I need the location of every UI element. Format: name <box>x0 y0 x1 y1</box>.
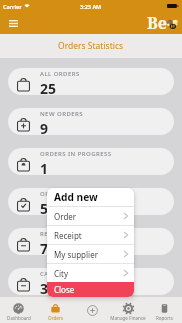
staticText: 5 <box>40 199 49 215</box>
button[interactable]: Add new <box>74 297 110 323</box>
button[interactable]: ORDERS DONE <box>8 188 174 215</box>
staticText: Close <box>54 284 75 295</box>
staticText: Reports <box>156 315 173 321</box>
staticText: Orders <box>48 315 63 321</box>
staticText: Orders Statistics <box>58 40 124 52</box>
button[interactable]: Dashboard <box>0 297 37 323</box>
staticText: 7 <box>40 239 49 255</box>
staticText: 3:23 AM <box>80 3 102 10</box>
staticText: 9 <box>40 119 49 135</box>
button[interactable]: Reports <box>146 297 182 323</box>
staticText: ALL ORDERS <box>40 70 80 78</box>
button[interactable]: RETURNED ORDERS <box>8 228 174 255</box>
button[interactable]: Order <box>47 207 134 225</box>
staticText: City <box>54 268 69 279</box>
button[interactable]: My supplier <box>47 245 134 263</box>
staticText: Dashboard <box>7 315 31 321</box>
staticText: NEW ORDERS <box>40 110 84 118</box>
staticText: 1 <box>40 159 49 175</box>
button[interactable]: ALL ORDERS <box>8 68 174 95</box>
staticText: Be <box>147 12 167 34</box>
staticText: Manage Finance <box>110 315 146 321</box>
staticText: My supplier <box>54 249 98 260</box>
staticText: CANCELLED ORDERS <box>40 270 106 278</box>
button[interactable]: City <box>47 264 134 282</box>
button[interactable]: Manage Finance <box>110 297 146 323</box>
button[interactable]: ORDERS IN PROGRESS <box>8 148 174 175</box>
button[interactable]: Close <box>47 282 134 297</box>
staticText: 3 <box>40 279 49 295</box>
staticText: 25 <box>40 79 57 95</box>
button[interactable]: Menu <box>4 12 22 34</box>
staticText: ORDERS IN PROGRESS <box>40 150 112 158</box>
staticText: Carrier <box>3 3 22 10</box>
staticText: ORDERS DONE <box>40 190 87 198</box>
button[interactable]: NEW ORDERS <box>8 108 174 135</box>
staticText: RETURNED ORDERS <box>40 230 103 238</box>
button[interactable]: CANCELLED ORDERS <box>8 268 174 295</box>
staticText: Receipt <box>54 230 82 241</box>
button[interactable]: Receipt <box>47 226 134 244</box>
staticText: Add new <box>54 190 98 204</box>
staticText: Order <box>54 211 77 222</box>
button[interactable]: Orders <box>37 297 74 323</box>
